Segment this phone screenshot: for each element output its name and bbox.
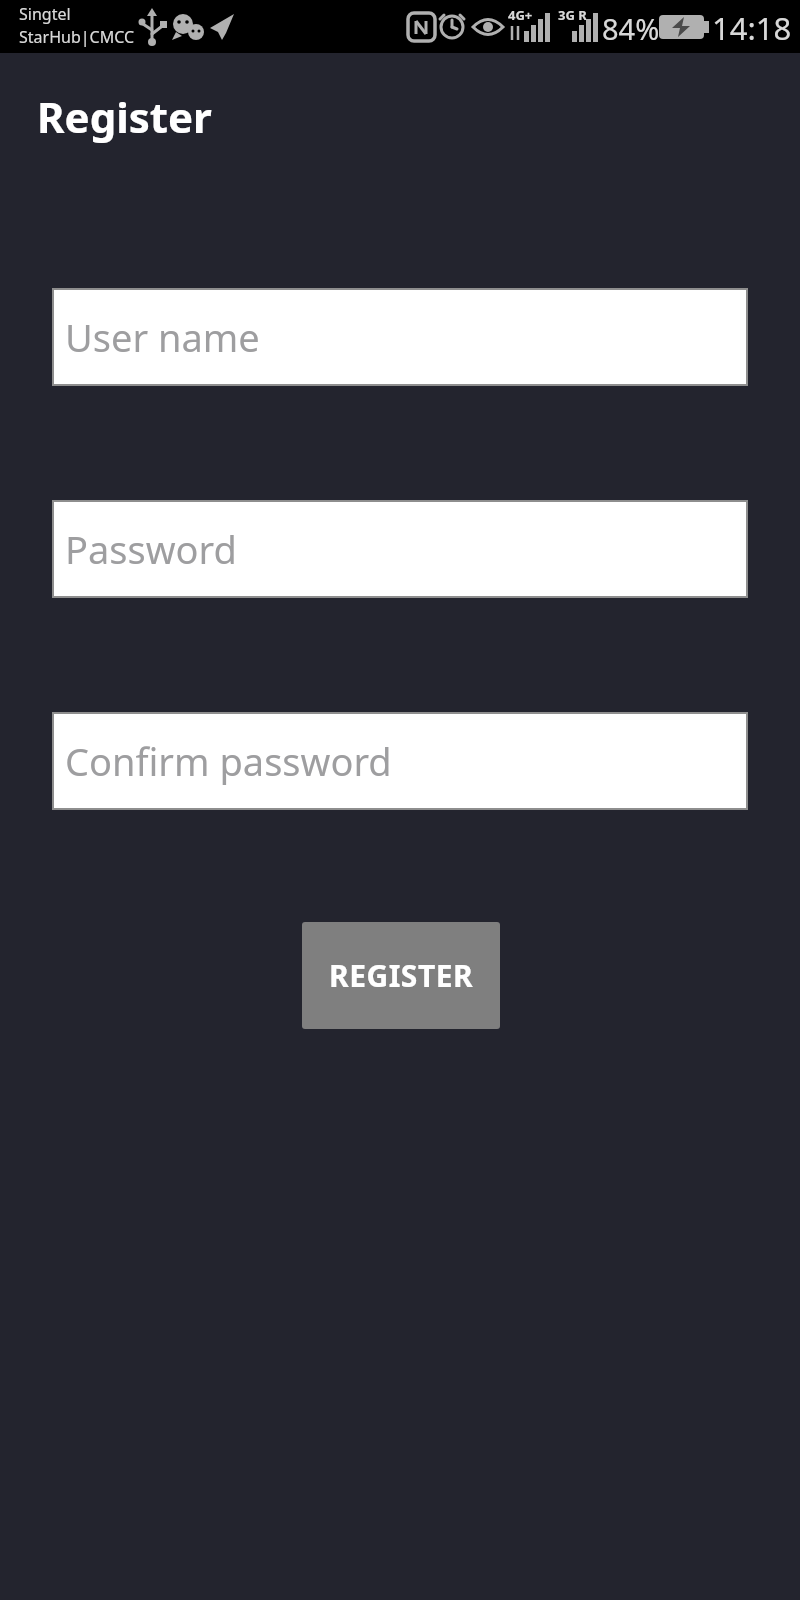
staticText: 14:18 [712,7,792,49]
staticText: 84% [602,9,660,48]
staticText: Password [65,523,237,575]
staticText: REGISTER [329,955,474,996]
staticText: User name [65,311,260,363]
staticText: Register [37,88,212,145]
staticText: Confirm password [65,735,392,787]
button[interactable]: User name [52,288,748,386]
staticText: 4G+ [508,6,533,24]
staticText: 3G R [558,6,587,24]
staticText: Singtel [19,3,71,25]
button[interactable]: Password [52,500,748,598]
button[interactable]: Confirm password [52,712,748,810]
button[interactable]: REGISTER [302,922,500,1029]
staticText: StarHub|CMCC [19,26,135,48]
